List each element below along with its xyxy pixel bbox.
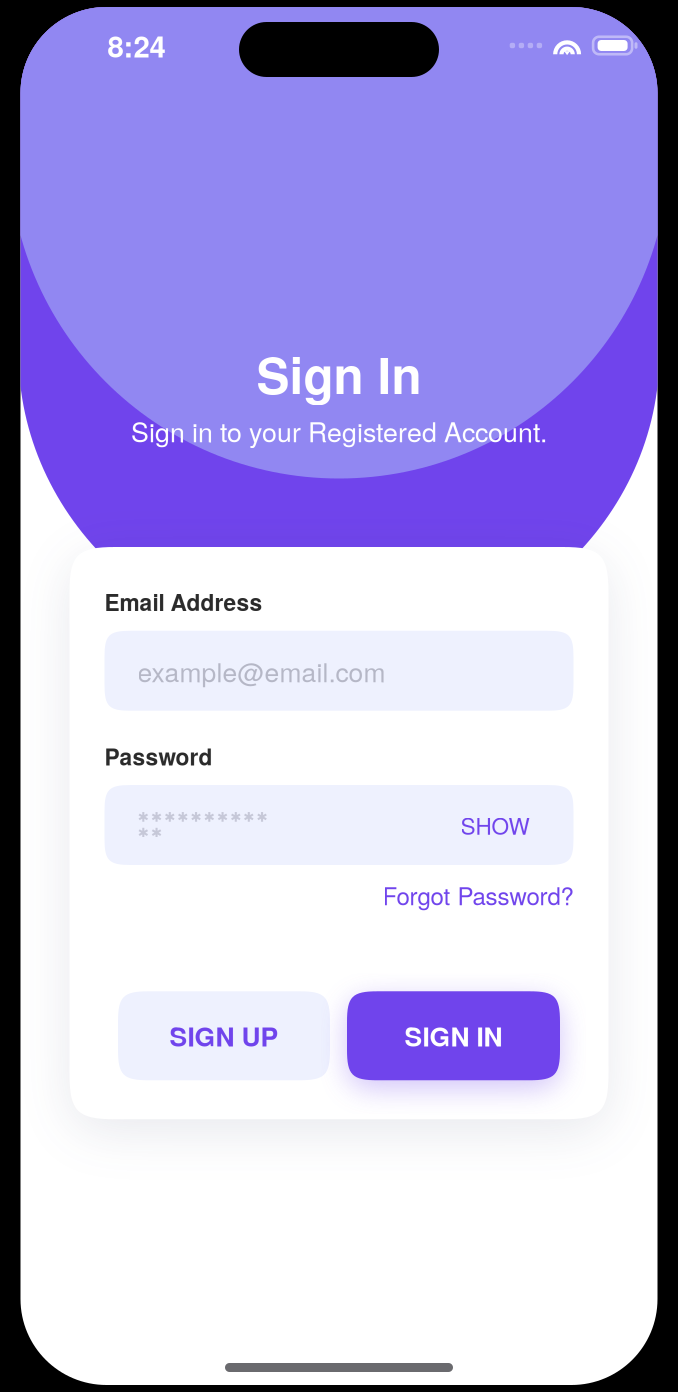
staticText: Email Address (104, 585, 262, 618)
staticText: SHOW (460, 809, 529, 841)
staticText: SIGN IN (404, 1017, 502, 1055)
staticText: Sign In (256, 338, 421, 409)
button[interactable]: SIGN IN (347, 991, 560, 1080)
staticText: ✱✱✱✱✱✱✱✱✱✱✱✱ (137, 809, 280, 840)
staticText: SIGN UP (169, 1017, 278, 1055)
staticText: 8:24 (107, 24, 165, 66)
staticText: Password (104, 740, 212, 772)
button[interactable]: Forgot Password? (382, 878, 573, 912)
staticText: Sign in to your Registered Account. (131, 412, 547, 450)
staticText: example@email.com (137, 652, 385, 690)
button[interactable]: SIGN UP (118, 991, 330, 1080)
staticText: Forgot Password? (382, 878, 573, 912)
button[interactable]: SHOW (450, 795, 539, 855)
